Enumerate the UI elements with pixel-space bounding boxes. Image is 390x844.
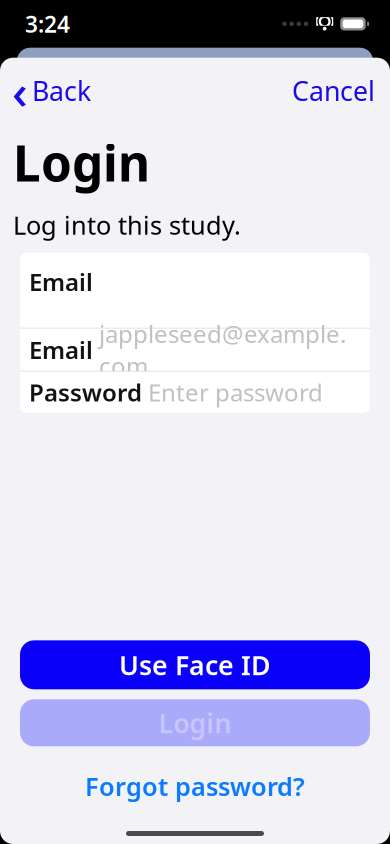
staticText: Password bbox=[29, 376, 142, 408]
staticText: Login bbox=[158, 705, 231, 741]
staticText: jappleseed@example.com bbox=[99, 318, 346, 382]
staticText: Forgot password? bbox=[85, 769, 305, 803]
button[interactable]: Email bbox=[20, 329, 370, 371]
staticText: ‹ bbox=[12, 59, 28, 122]
button[interactable]: Password bbox=[20, 372, 370, 413]
button[interactable]: ‹ bbox=[6, 55, 97, 126]
button[interactable]: Login bbox=[20, 699, 370, 746]
staticText: Enter password bbox=[148, 376, 323, 408]
button[interactable]: Cancel bbox=[284, 67, 383, 114]
staticText: Log into this study. bbox=[13, 208, 241, 242]
staticText: 3:24 bbox=[25, 9, 70, 39]
staticText: Email bbox=[29, 334, 93, 366]
button[interactable]: Use Face ID bbox=[20, 640, 370, 689]
staticText: Use Face ID bbox=[119, 647, 271, 683]
staticText: Login bbox=[13, 130, 150, 195]
staticText: Email bbox=[29, 266, 93, 298]
staticText: Cancel bbox=[292, 73, 375, 108]
button[interactable]: Email bbox=[20, 253, 370, 328]
staticText: Back bbox=[32, 73, 91, 108]
button[interactable]: Forgot password? bbox=[71, 762, 319, 810]
